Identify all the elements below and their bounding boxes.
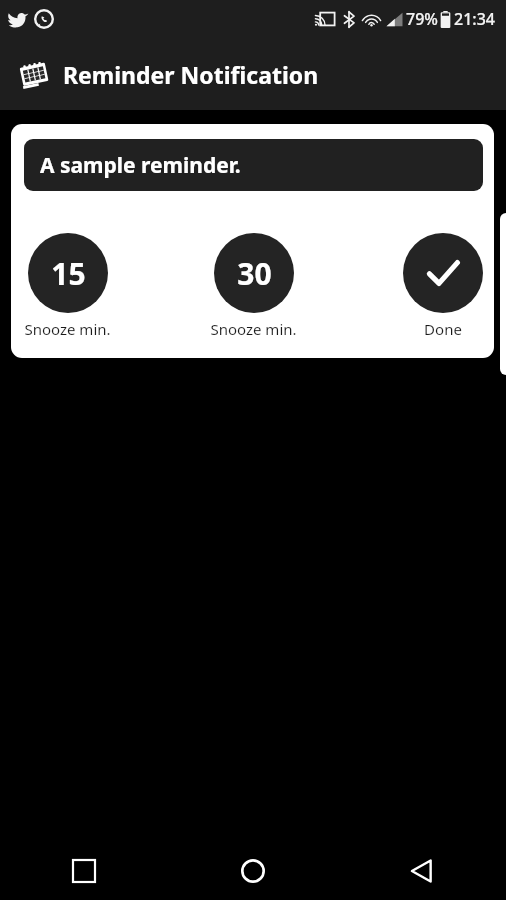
staticText: 21:34 (454, 8, 495, 30)
button[interactable]: Back (337, 842, 506, 900)
staticText: Done (424, 319, 462, 339)
button[interactable]: Home (168, 842, 337, 900)
staticText: 30 (237, 253, 272, 294)
button[interactable]: Snooze min. (210, 233, 297, 339)
button[interactable]: A sample reminder. (11, 124, 494, 358)
staticText: 79% (406, 8, 438, 30)
staticText: Reminder Notification (63, 59, 319, 90)
staticText: 15 (51, 253, 86, 294)
button[interactable] (500, 213, 506, 375)
staticText: Snooze min. (24, 319, 111, 339)
button[interactable]: Snooze min. (24, 233, 111, 339)
staticText: A sample reminder. (40, 151, 241, 180)
button[interactable]: Recent apps (0, 842, 168, 900)
button[interactable]: Done (403, 233, 483, 339)
button[interactable]: A sample reminder. (24, 139, 483, 191)
staticText: Snooze min. (210, 319, 297, 339)
